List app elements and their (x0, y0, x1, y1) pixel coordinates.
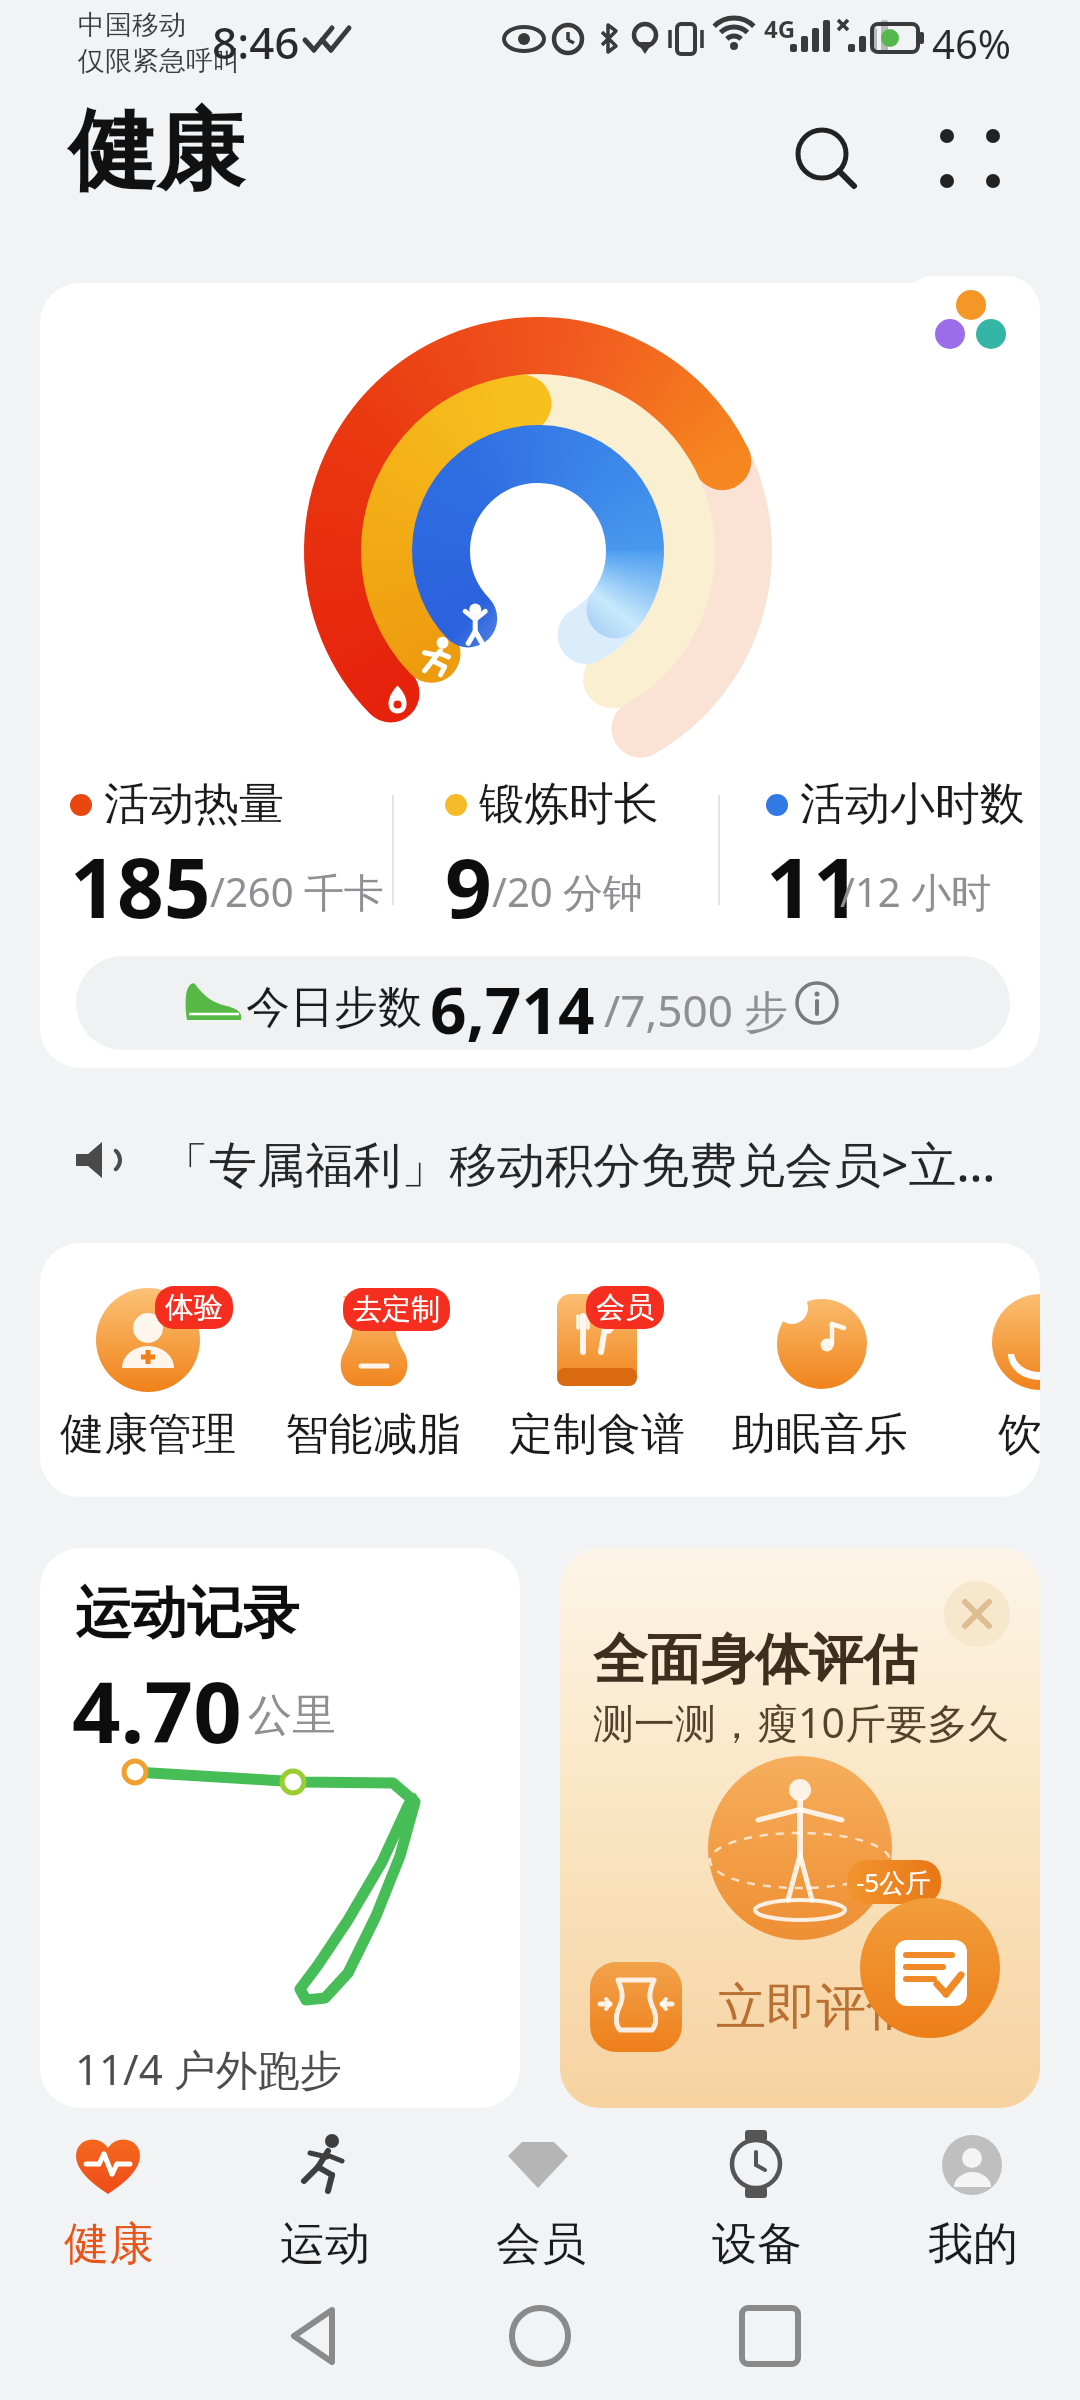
staticText: 饮食 (998, 1407, 1040, 1462)
staticText: 去定制 (353, 1291, 440, 1328)
staticText: 中国移动 (78, 8, 186, 42)
staticText: 锻炼时长 (479, 776, 659, 833)
staticText: 11/4 户外跑步 (75, 2040, 342, 2097)
staticText: 9 (445, 830, 492, 942)
button[interactable] (780, 110, 1020, 210)
staticText: 仅限紧急呼叫 (78, 44, 240, 78)
staticText: 会员 (496, 2216, 586, 2273)
staticText: 4.70 (72, 1652, 242, 1768)
staticText: 活动小时数 (800, 776, 1025, 833)
button[interactable]: 我的 (908, 2124, 1036, 2264)
button[interactable]: 运动 (260, 2124, 388, 2264)
staticText: 设备 (712, 2216, 802, 2273)
staticText: 立即评估 (716, 1976, 916, 2039)
staticText: 11 (766, 830, 860, 942)
staticText: 公里 (248, 1688, 336, 1743)
button[interactable]: 设备 (692, 2124, 820, 2264)
button[interactable] (990, 1288, 1040, 1392)
staticText: 活动热量 (104, 776, 284, 833)
staticText: 助眠音乐 (732, 1407, 908, 1462)
staticText: 今日步数 (246, 980, 422, 1035)
staticText: 185 (70, 830, 211, 942)
staticText: 46% (932, 16, 1011, 70)
staticText: /12 小时 (840, 864, 992, 919)
button[interactable] (768, 1288, 872, 1392)
staticText: 体验 (165, 1289, 223, 1326)
staticText: 「专属福利」移动积分免费兑会员>立… (161, 1131, 996, 1197)
button[interactable] (40, 283, 1040, 1068)
staticText: 8:46 (212, 12, 300, 72)
staticText: 6,714 (430, 966, 595, 1053)
staticText: 健康 (64, 2216, 154, 2273)
staticText: 会员 (596, 1289, 654, 1326)
staticText: 测一测，瘦10斤要多久 (593, 1694, 1009, 1750)
staticText: /20 分钟 (492, 864, 644, 919)
button[interactable] (321, 1288, 425, 1392)
button[interactable] (40, 1548, 520, 2108)
button[interactable]: -5公斤 (560, 1548, 1040, 2108)
staticText: -5公斤 (856, 1864, 932, 1900)
staticText: /260 千卡 (210, 864, 384, 919)
button[interactable]: 健康 (44, 2124, 172, 2264)
staticText: 我的 (928, 2216, 1018, 2273)
button[interactable] (900, 276, 1040, 364)
staticText: 智能减脂 (285, 1407, 461, 1462)
button[interactable] (545, 1288, 649, 1392)
staticText: 全面身体评估 (593, 1626, 917, 1694)
staticText: 健康 (68, 96, 244, 207)
button[interactable] (76, 956, 1010, 1050)
button[interactable]: 会员 (476, 2124, 604, 2264)
staticText: 健康管理 (60, 1407, 236, 1462)
staticText: 定制食谱 (509, 1407, 685, 1462)
staticText: 4G (764, 12, 796, 45)
button[interactable] (96, 1288, 200, 1392)
staticText: 运动记录 (75, 1578, 299, 1649)
staticText: /7,500 步 (604, 980, 789, 1040)
staticText: 运动 (280, 2216, 370, 2273)
